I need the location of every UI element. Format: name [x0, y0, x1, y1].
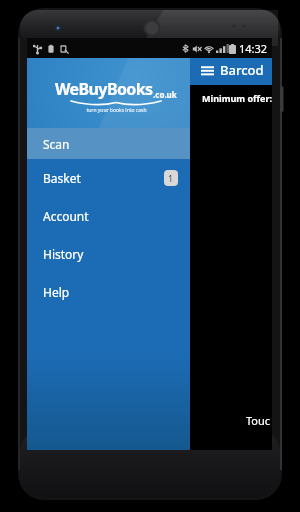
staticText: History [43, 246, 84, 262]
staticText: Account [43, 208, 89, 224]
staticText: Touc [246, 413, 271, 428]
staticText: 1 [168, 172, 174, 184]
button[interactable]: Open navigation drawer [197, 58, 272, 85]
staticText: Help [43, 284, 70, 300]
staticText: Minimum offer: [202, 92, 272, 104]
other: Open navigation drawer [201, 66, 214, 77]
button[interactable]: Help [27, 273, 190, 311]
staticText: Scan [43, 136, 70, 152]
button[interactable]: Account [27, 197, 190, 235]
staticText: WeBuyBooks [55, 78, 153, 100]
staticText: Barcode [220, 61, 268, 82]
staticText: turn your books into cash [86, 107, 147, 114]
button[interactable]: Basket [27, 159, 190, 197]
staticText: Basket [43, 170, 81, 186]
button[interactable]: Scan [27, 128, 190, 159]
staticText: .co.uk [153, 89, 177, 100]
button[interactable]: History [27, 235, 190, 273]
staticText: 14:32 [239, 41, 268, 56]
